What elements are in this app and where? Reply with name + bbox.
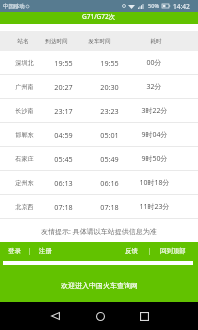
staticText: 50%: [148, 2, 160, 10]
staticText: 3时22分: [141, 106, 168, 116]
button[interactable]: 北京西: [0, 195, 198, 219]
staticText: 10时18分: [139, 178, 170, 188]
staticText: 发车时间: [88, 38, 111, 45]
button[interactable]: 长沙南: [0, 99, 198, 123]
staticText: 20:30: [100, 82, 119, 92]
staticText: G71/G72次: [82, 12, 116, 21]
staticText: 到达时间: [45, 38, 68, 45]
staticText: 欢迎进入中国火车查询网: [61, 281, 138, 290]
staticText: 05:45: [54, 154, 73, 164]
staticText: 04:59: [54, 130, 73, 140]
staticText: 07:18: [54, 202, 73, 212]
button[interactable]: 石家庄: [0, 147, 198, 171]
button[interactable]: 邯郸东: [0, 123, 198, 147]
staticText: 广州南: [15, 83, 34, 91]
staticText: 00分: [146, 58, 162, 68]
staticText: 9时04分: [141, 130, 168, 140]
staticText: 07:18: [100, 202, 119, 212]
button[interactable]: 广州南: [0, 75, 198, 99]
staticText: |: [28, 246, 32, 255]
staticText: 23:23: [100, 106, 119, 116]
button[interactable]: 回到顶部: [160, 247, 186, 255]
staticText: 长沙南: [15, 107, 34, 115]
staticText: 14:42: [173, 2, 190, 11]
staticText: 定州东: [15, 179, 34, 187]
staticText: 19:55: [100, 58, 119, 68]
staticText: 中国移动: [3, 3, 25, 10]
staticText: 20:27: [54, 82, 73, 92]
staticText: 石家庄: [15, 155, 34, 163]
staticText: 32分: [146, 82, 162, 92]
staticText: 05:01: [100, 130, 119, 140]
staticText: 友情提示: 具体请以车站提供信息为准: [41, 227, 157, 237]
staticText: 23:17: [54, 106, 73, 116]
staticText: 北京西: [15, 203, 34, 211]
button[interactable]: 深圳北: [0, 51, 198, 75]
button[interactable]: 定州东: [0, 171, 198, 195]
staticText: 19:55: [54, 58, 73, 68]
staticText: 06:13: [54, 178, 73, 188]
staticText: 05:49: [100, 154, 119, 164]
button[interactable]: Recents: [134, 302, 154, 330]
button[interactable]: 登录: [8, 247, 21, 255]
staticText: 邯郸东: [15, 131, 34, 139]
button[interactable]: Back: [45, 302, 65, 330]
staticText: |: [148, 246, 152, 255]
button[interactable]: Home: [90, 302, 110, 330]
staticText: 06:16: [100, 178, 119, 188]
button[interactable]: 反馈: [125, 247, 138, 255]
staticText: 站名: [17, 38, 29, 45]
button[interactable]: 注册: [39, 247, 52, 255]
staticText: 9时50分: [141, 154, 168, 164]
staticText: 11时23分: [139, 202, 170, 212]
staticText: 深圳北: [15, 59, 34, 67]
staticText: 耗时: [150, 38, 162, 45]
